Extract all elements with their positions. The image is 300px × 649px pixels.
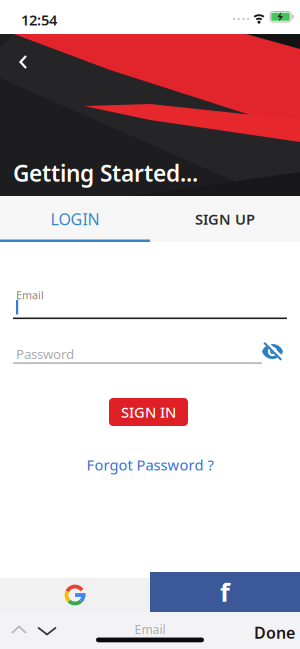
staticText: SIGN IN bbox=[121, 402, 176, 422]
staticText: Email bbox=[134, 621, 165, 637]
staticText: SIGN UP bbox=[195, 209, 255, 229]
staticText: Forgot Password ? bbox=[86, 455, 213, 474]
button[interactable] bbox=[262, 341, 283, 362]
staticText: 12:54 bbox=[21, 10, 57, 29]
button[interactable]: SIGN UP bbox=[150, 196, 300, 242]
button[interactable] bbox=[0, 578, 150, 612]
staticText: Getting Started... bbox=[13, 158, 198, 188]
staticText: LOGIN bbox=[50, 208, 99, 230]
staticText: Password bbox=[16, 345, 74, 363]
button[interactable] bbox=[35, 622, 59, 646]
button[interactable]: SIGN IN bbox=[109, 398, 188, 426]
staticText: f bbox=[220, 575, 230, 609]
button[interactable]: LOGIN bbox=[0, 196, 150, 242]
button[interactable]: Email bbox=[13, 286, 287, 320]
button[interactable]: Password bbox=[13, 341, 287, 364]
button[interactable]: f bbox=[150, 572, 300, 612]
staticText: Email bbox=[16, 288, 44, 302]
button[interactable]: Done bbox=[254, 622, 295, 643]
staticText: Done bbox=[254, 622, 295, 643]
button[interactable]: Forgot Password ? bbox=[0, 455, 300, 474]
button[interactable] bbox=[9, 622, 29, 646]
button[interactable] bbox=[11, 49, 47, 81]
